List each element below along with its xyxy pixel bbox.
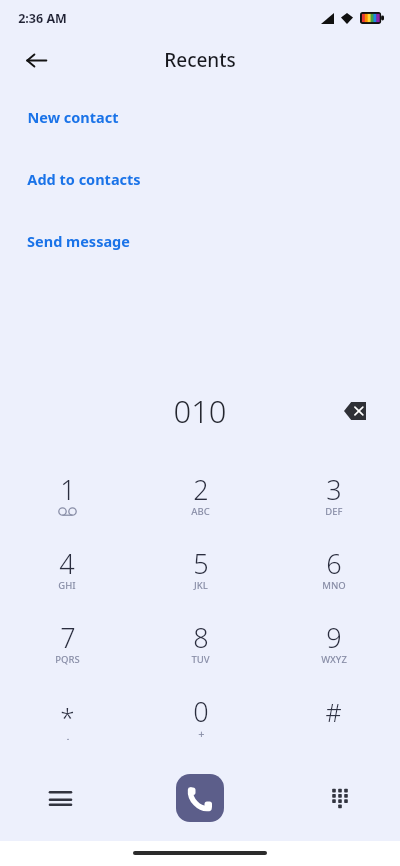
button[interactable]: 5: [134, 531, 267, 605]
button[interactable]: Back: [14, 38, 58, 82]
button[interactable]: New contact: [0, 106, 400, 128]
button[interactable]: 6: [267, 531, 400, 605]
staticText: WXYZ: [321, 653, 347, 666]
staticText: 8: [193, 619, 209, 649]
button[interactable]: #: [267, 679, 400, 753]
button[interactable]: Menu: [38, 776, 82, 820]
staticText: TUV: [191, 653, 210, 666]
staticText: ABC: [191, 505, 210, 518]
staticText: *: [60, 699, 75, 729]
staticText: ,: [66, 726, 70, 740]
staticText: 6: [326, 545, 342, 575]
button[interactable]: 9: [267, 605, 400, 679]
staticText: 010: [173, 390, 227, 432]
staticText: 3: [326, 471, 342, 501]
button[interactable]: Call: [176, 774, 224, 822]
staticText: New contact: [27, 107, 119, 127]
staticText: Recents: [164, 47, 236, 73]
staticText: GHI: [58, 579, 76, 592]
staticText: Add to contacts: [27, 169, 141, 189]
button[interactable]: *: [0, 679, 134, 753]
staticText: 4: [59, 545, 75, 575]
button[interactable]: Send message: [0, 230, 400, 252]
staticText: DEF: [325, 505, 343, 518]
button[interactable]: 4: [0, 531, 134, 605]
staticText: MNO: [322, 579, 346, 592]
button[interactable]: 0: [134, 679, 267, 753]
staticText: 5: [193, 545, 209, 575]
button[interactable]: 2: [134, 457, 267, 531]
staticText: 2: [193, 471, 209, 501]
staticText: Send message: [27, 231, 130, 251]
button[interactable]: 8: [134, 605, 267, 679]
button[interactable]: 7: [0, 605, 134, 679]
button[interactable]: Dialpad: [318, 776, 362, 820]
button[interactable]: 3: [267, 457, 400, 531]
button[interactable]: 1: [0, 457, 134, 531]
staticText: 1: [60, 471, 76, 501]
staticText: #: [325, 695, 342, 725]
staticText: 0: [193, 693, 209, 723]
staticText: 7: [60, 619, 76, 649]
staticText: 2:36 AM: [18, 10, 67, 27]
staticText: +: [198, 726, 205, 740]
button[interactable]: Add to contacts: [0, 168, 400, 190]
button[interactable]: Delete: [336, 391, 376, 431]
staticText: 9: [326, 619, 342, 649]
staticText: JKL: [194, 579, 208, 592]
staticText: PQRS: [55, 653, 80, 666]
